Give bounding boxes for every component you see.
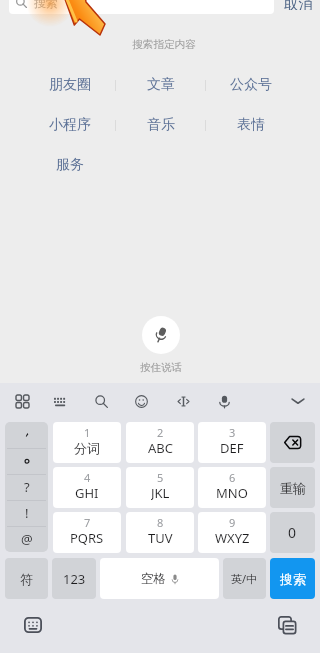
button[interactable]: ！ (5, 500, 48, 526)
staticText: 6 (229, 470, 236, 482)
staticText: 搜索指定内容 (132, 38, 196, 51)
staticText: 按住说话 (140, 361, 182, 374)
button[interactable]: 搜索 (82, 382, 120, 420)
button[interactable]: 更多 (3, 382, 41, 420)
staticText: ! (25, 504, 29, 522)
staticText: JKL (151, 484, 170, 501)
staticText: 取消 (284, 0, 313, 10)
staticText: 7 (84, 515, 91, 527)
staticText: 3 (229, 425, 236, 437)
button[interactable]: 收起键盘 (279, 382, 317, 420)
button[interactable]: 8 TUV (126, 512, 194, 553)
button[interactable]: 剪贴板 (269, 607, 305, 643)
staticText: 英/中 (231, 571, 258, 586)
staticText: 123 (63, 570, 86, 588)
staticText: GHI (75, 484, 99, 501)
button[interactable]: 空格 (100, 558, 219, 599)
button[interactable]: 音乐 (130, 114, 192, 136)
staticText: 小程序 (49, 116, 91, 134)
button[interactable]: 3 DEF (198, 422, 266, 463)
button[interactable]: 服务 (39, 154, 101, 176)
staticText: 音乐 (147, 116, 175, 134)
button[interactable]: 中英文切换 (223, 558, 266, 599)
staticText: 搜索 (34, 0, 58, 10)
staticText: WXYZ (215, 529, 250, 546)
button[interactable]: 7 PQRS (53, 512, 121, 553)
staticText: ? (24, 478, 30, 496)
button[interactable]: 4 GHI (53, 467, 121, 508)
button[interactable]: 小程序 (39, 114, 101, 136)
staticText: PQRS (70, 529, 104, 546)
button[interactable]: 移动光标 (164, 382, 202, 420)
staticText: 8 (157, 515, 164, 527)
button[interactable]: 搜索框 (9, 0, 274, 14)
button[interactable]: 9 WXYZ (198, 512, 266, 553)
button[interactable]: 2 ABC (126, 422, 194, 463)
staticText: DEF (220, 439, 244, 456)
button[interactable]: 1 分词 (53, 422, 121, 463)
button[interactable]: 键盘 (15, 607, 51, 643)
button[interactable]: 表情 (122, 382, 160, 420)
button[interactable]: 删除 (270, 422, 315, 463)
staticText: 服务 (56, 156, 84, 174)
button[interactable]: ？ (5, 474, 48, 500)
staticText: MNO (216, 484, 248, 501)
staticText: ABC (148, 439, 173, 456)
button[interactable]: 。 (5, 448, 48, 474)
staticText: 2 (157, 425, 164, 437)
button[interactable]: 语音输入 (205, 382, 243, 420)
staticText: 9 (229, 515, 236, 527)
staticText: 1 (84, 425, 91, 437)
button[interactable]: 符号 (5, 558, 48, 599)
staticText: 重输 (280, 480, 306, 496)
staticText: 4 (84, 470, 91, 482)
staticText: 表情 (237, 116, 265, 134)
button[interactable]: 搜索 (270, 558, 315, 599)
staticText: 符 (20, 571, 33, 587)
button[interactable]: 表情 (220, 114, 282, 136)
button[interactable]: 键盘 (41, 382, 79, 420)
button[interactable]: 5 JKL (126, 467, 194, 508)
button[interactable]: 朋友圈 (39, 74, 101, 96)
button[interactable]: 0 (270, 512, 315, 553)
button[interactable]: 公众号 (220, 74, 282, 96)
button[interactable]: 123 (52, 558, 96, 599)
button[interactable]: ， (5, 422, 48, 448)
staticText: 5 (157, 470, 164, 482)
button[interactable]: 文章 (130, 74, 192, 96)
staticText: 分词 (74, 440, 100, 456)
staticText: 公众号 (230, 76, 272, 94)
staticText: @ (21, 530, 33, 548)
staticText: 0 (288, 523, 297, 542)
staticText: 文章 (147, 76, 175, 94)
staticText: 空格 (141, 571, 166, 587)
button[interactable]: 重输 (270, 467, 315, 508)
button[interactable]: 取消 (278, 0, 318, 10)
button[interactable]: @ (5, 526, 48, 552)
staticText: 朋友圈 (49, 76, 91, 94)
staticText: TUV (148, 529, 173, 546)
button[interactable]: 按住说话 (142, 316, 180, 354)
button[interactable]: 6 MNO (198, 467, 266, 508)
staticText: 搜索 (280, 571, 306, 587)
